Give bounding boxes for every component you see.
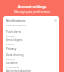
staticText: Enabled: [6, 34, 16, 37]
button[interactable]: Notifications: [6, 19, 57, 26]
staticText: Limited: [6, 57, 15, 60]
staticText: Manage your preferences: [0, 10, 64, 14]
other: More options: [54, 19, 57, 22]
staticText: Push alerts: [6, 30, 22, 34]
staticText: Privacy: [6, 47, 17, 51]
staticText: Weekly: [6, 42, 14, 45]
button[interactable]: Email digest: [3, 38, 59, 46]
staticText: Alerts and sounds: [6, 23, 27, 26]
staticText: While using: [6, 65, 20, 68]
staticText: Location: [6, 61, 18, 65]
button[interactable]: Ad personalization: [3, 69, 59, 72]
staticText: Account settings: [0, 4, 64, 9]
staticText: Email digest: [6, 38, 23, 42]
staticText: Ad personalization: [6, 69, 32, 72]
staticText: Notifications: [6, 19, 26, 23]
button[interactable]: Push alerts: [3, 30, 59, 38]
button[interactable]: Location: [3, 61, 59, 69]
staticText: Data sharing: [6, 53, 24, 57]
button[interactable]: Data sharing: [3, 53, 59, 61]
